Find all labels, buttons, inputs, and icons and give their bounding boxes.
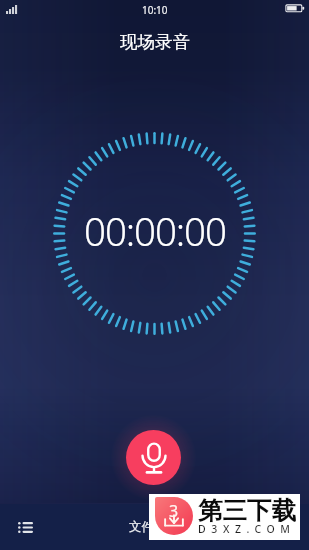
staticText: 3 xyxy=(169,500,179,522)
staticText: 00:00:00 xyxy=(84,205,226,257)
staticText: 文件列表 xyxy=(129,519,179,535)
staticText: 10:10 xyxy=(142,3,168,17)
staticText: 现场录音 xyxy=(120,31,190,53)
staticText: D3XZ.COM xyxy=(198,522,296,536)
button[interactable]: File list xyxy=(0,504,50,550)
button[interactable]: 文件列表 xyxy=(50,504,259,550)
staticText: 第三下载 xyxy=(198,495,296,526)
